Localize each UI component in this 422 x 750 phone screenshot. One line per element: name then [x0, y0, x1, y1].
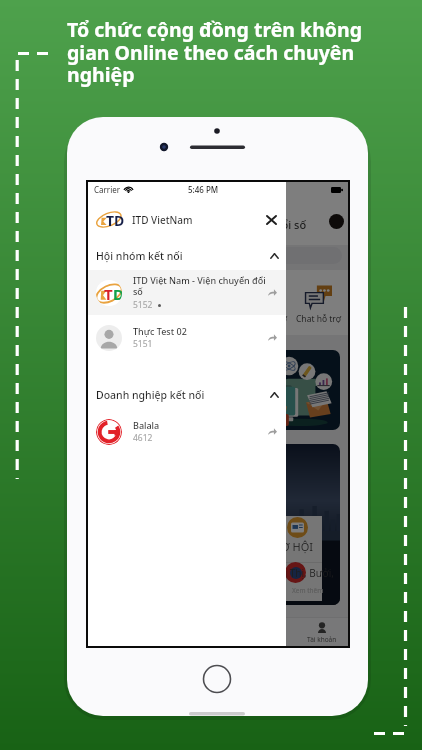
staticText: Chuyển đổi số: [232, 217, 307, 232]
staticText: Chat hỗ trợ: [242, 313, 287, 325]
staticText: D: [113, 284, 122, 304]
staticText: 4612: [133, 432, 153, 444]
button[interactable]: Thực Test 02: [88, 315, 286, 360]
button[interactable]: Chat hỗ trợ: [291, 285, 345, 325]
staticText: T: [104, 284, 113, 304]
button[interactable]: Doanh nghiệp kết nối: [88, 381, 286, 409]
button[interactable]: Balala: [88, 409, 286, 454]
staticText: ITD Việt Nam - Viện chuyển đổi số: [133, 274, 266, 298]
button[interactable]: T: [88, 270, 286, 315]
button[interactable]: Tài khoản: [296, 622, 348, 644]
staticText: Chat hỗ trợ: [188, 313, 233, 325]
staticText: 5:46 PM: [188, 184, 219, 195]
staticText: Chat hỗ trợ: [296, 313, 341, 325]
button[interactable]: Close: [263, 212, 279, 228]
button[interactable]: Trang chủ: [244, 622, 296, 644]
staticText: g Thị, Bưởi,: [281, 566, 335, 580]
staticText: 5151: [133, 338, 153, 350]
button[interactable]: TD: [88, 197, 286, 242]
button[interactable]: Chat hỗ trợ: [183, 285, 237, 325]
staticText: Tài khoản: [307, 635, 337, 644]
staticText: Thực Test 02: [133, 325, 187, 337]
staticText: Carrier: [94, 184, 121, 195]
staticText: ITD VietNam: [132, 213, 193, 227]
staticText: TD: [106, 211, 125, 230]
button[interactable]: Hội nhóm kết nối: [88, 242, 286, 270]
staticText: Balala: [133, 419, 160, 431]
button[interactable]: Chat hỗ trợ: [237, 285, 291, 325]
staticText: Hội nhóm kết nối: [96, 249, 183, 263]
staticText: Ơ HỘI: [281, 539, 313, 554]
staticText: Xem thêm: [292, 586, 324, 595]
staticText: Doanh nghiệp kết nối: [96, 388, 205, 402]
staticText: 5152: [133, 299, 153, 311]
staticText: Tổ chức cộng đồng trên không gian Online…: [67, 16, 396, 87]
